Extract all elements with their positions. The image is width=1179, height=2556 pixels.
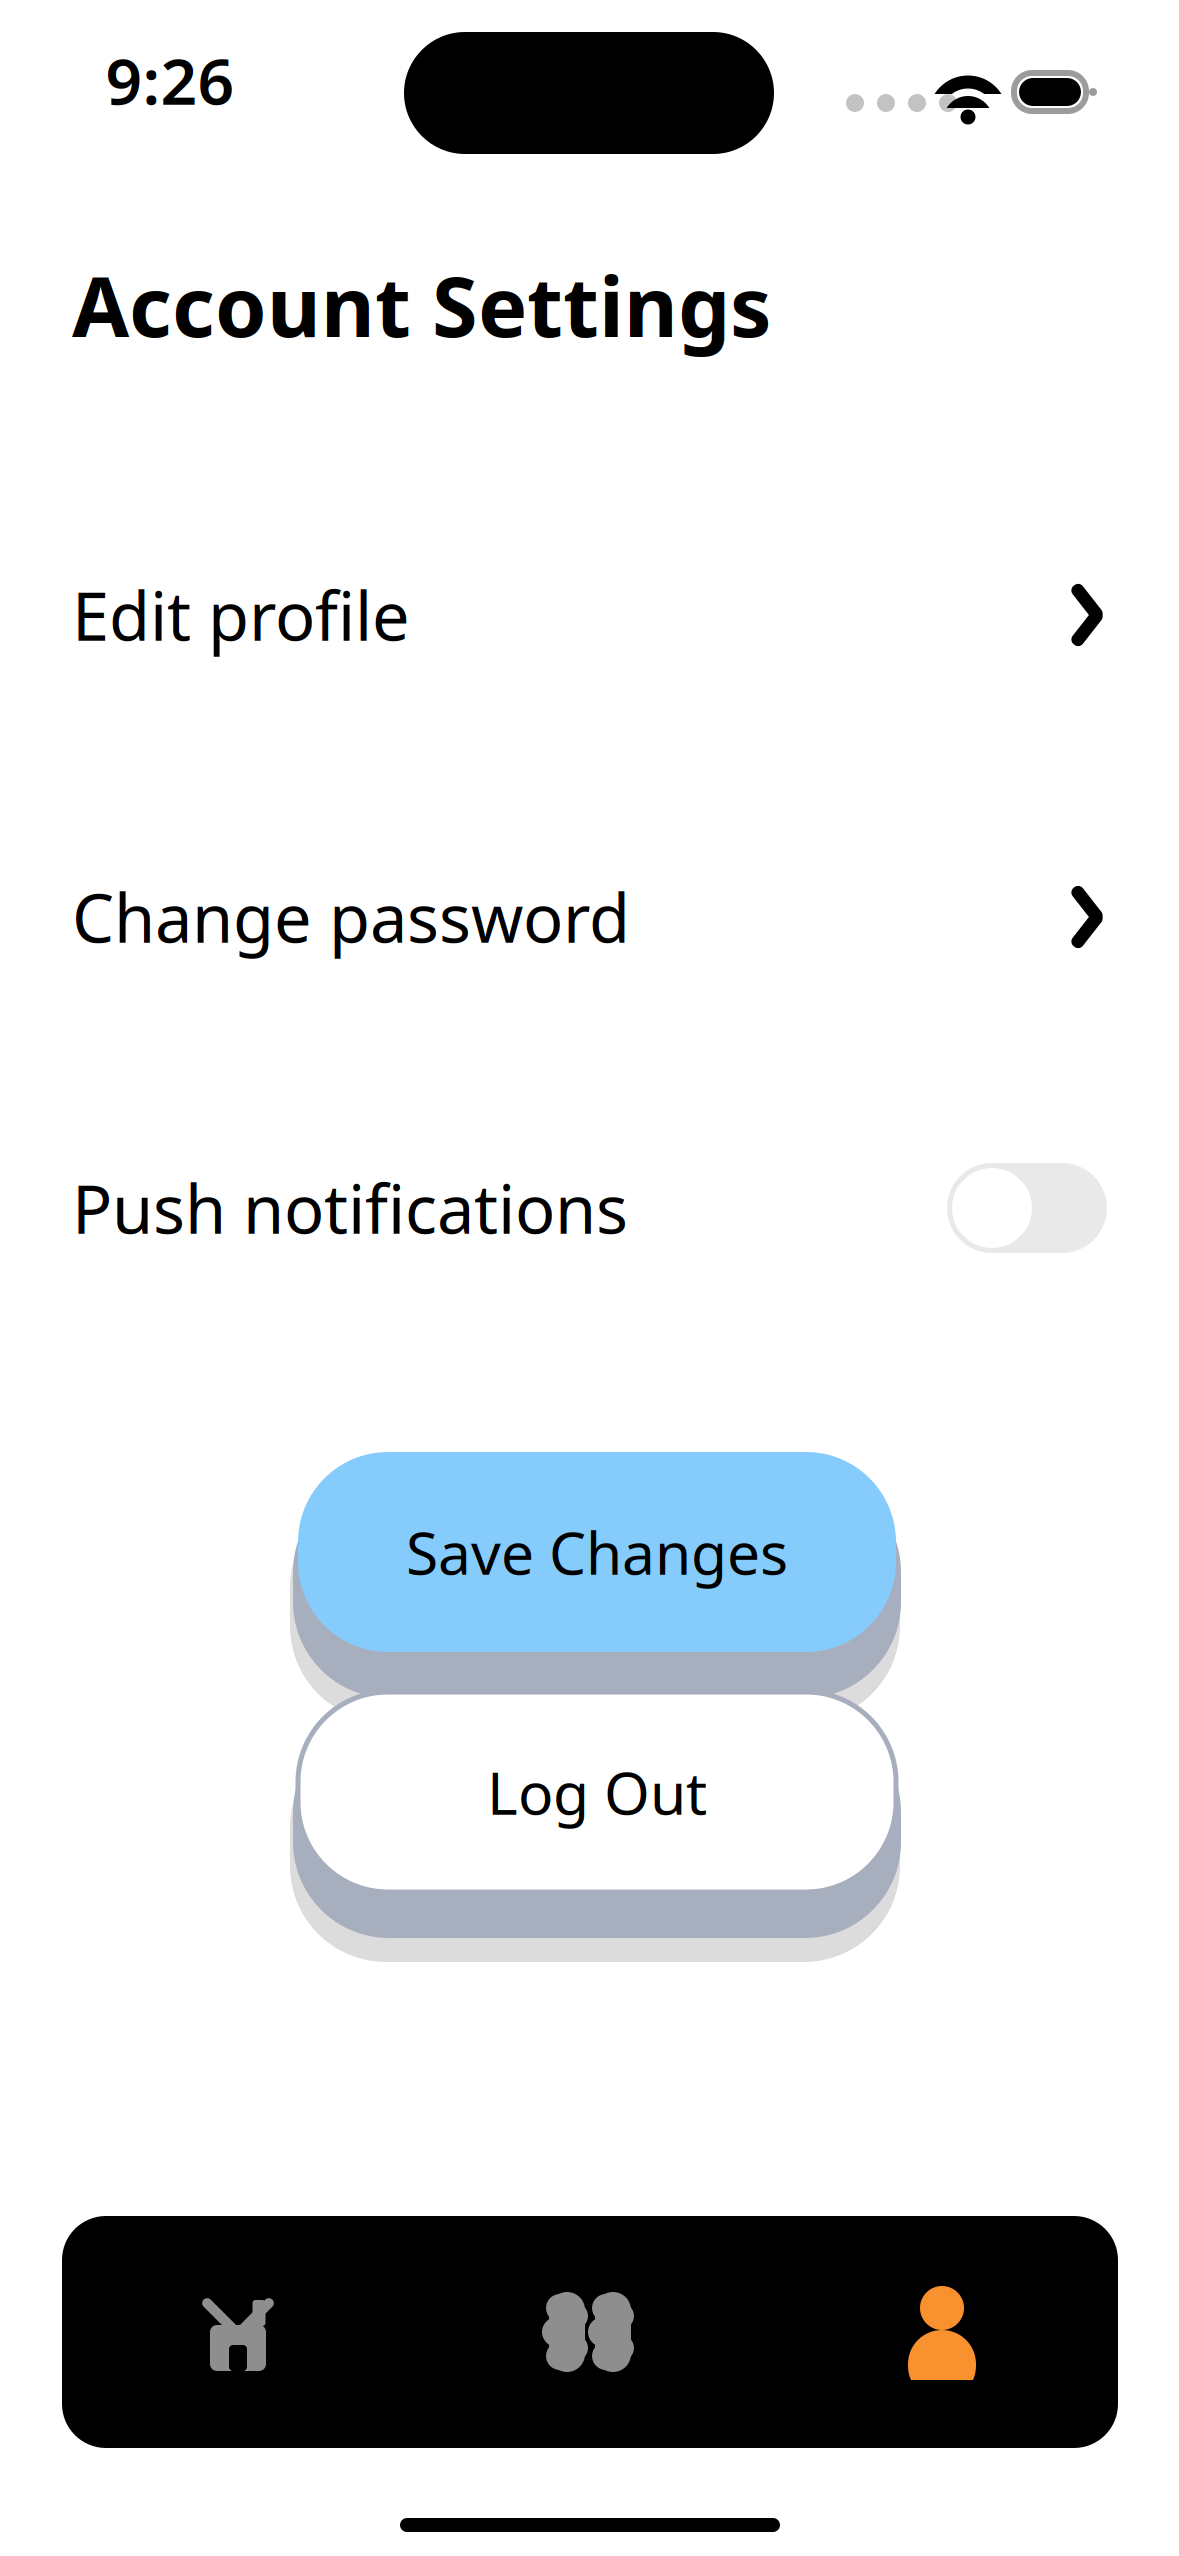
- button[interactable]: Change password: [0, 872, 1179, 962]
- staticText: Account Settings: [72, 250, 771, 360]
- staticText: Change password: [72, 873, 630, 961]
- staticText: Edit profile: [72, 571, 410, 659]
- button[interactable]: Home: [62, 2216, 414, 2448]
- button[interactable]: Insights: [414, 2216, 766, 2448]
- staticText: Save Changes: [406, 1513, 788, 1591]
- button[interactable]: Log Out: [290, 1692, 904, 1966]
- button[interactable]: Push notifications: [0, 1158, 1179, 1258]
- staticText: Push notifications: [72, 1164, 628, 1252]
- staticText: Log Out: [487, 1753, 707, 1831]
- button[interactable]: Profile: [766, 2216, 1118, 2448]
- button[interactable]: Edit profile: [0, 570, 1179, 660]
- button[interactable]: Save Changes: [290, 1452, 904, 1726]
- staticText: 9:26: [105, 37, 234, 122]
